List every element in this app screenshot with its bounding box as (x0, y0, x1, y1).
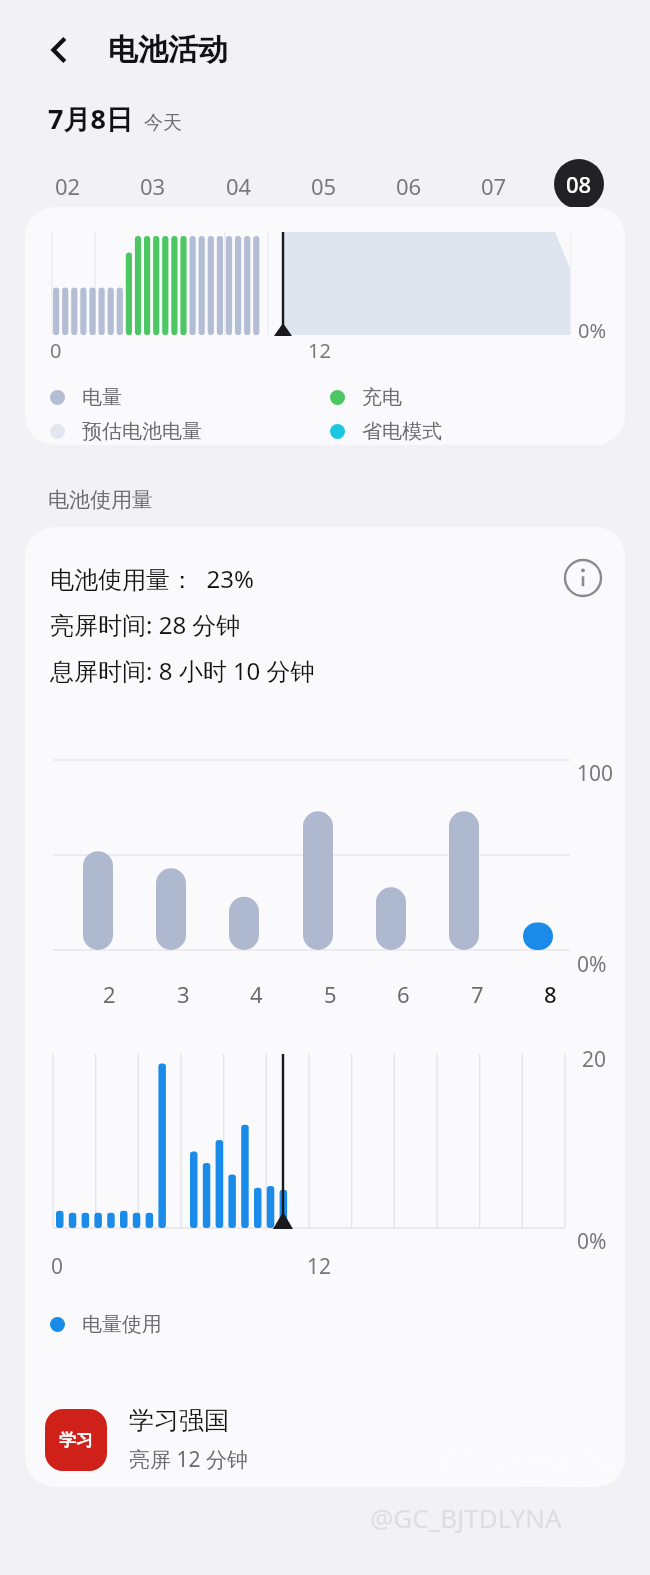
button[interactable]: 充电 (330, 385, 402, 410)
button[interactable]: Back (34, 24, 86, 76)
button[interactable]: 电量使用 (50, 1312, 162, 1337)
staticText: 08 (566, 169, 592, 199)
staticText: 7月8日 (48, 100, 133, 137)
staticText: 0% (577, 1227, 607, 1256)
button[interactable]: 学习 (45, 1392, 625, 1487)
button[interactable]: 0 (25, 207, 625, 445)
staticText: 12 (307, 1252, 332, 1281)
staticText: 0% (577, 950, 607, 979)
staticText: 电量使用 (82, 1312, 162, 1337)
staticText: 0 (51, 1252, 64, 1281)
staticText: 20 (582, 1045, 607, 1074)
staticText: 3 (177, 979, 190, 1009)
button[interactable]: 08 (554, 159, 604, 209)
staticText: 电量 (82, 385, 122, 410)
staticText: 4 (250, 979, 263, 1009)
staticText: 04 (226, 171, 252, 201)
staticText: 100 (577, 759, 614, 788)
staticText: 今天 (144, 111, 182, 135)
staticText: 学习强国 (129, 1405, 229, 1436)
staticText: 03 (140, 171, 166, 201)
staticText: @GC_BJTDLYNA (370, 1500, 562, 1535)
staticText: 0 (50, 337, 62, 364)
button[interactable]: Information (555, 550, 611, 606)
staticText: 电池使用量 (48, 487, 153, 513)
button[interactable]: 省电模式 (330, 419, 442, 444)
staticText: 8 (544, 979, 557, 1009)
staticText: 电池使用量： 23% (50, 562, 254, 595)
staticText: 电池活动 (108, 31, 228, 69)
staticText: 亮屏 12 分钟 (129, 1445, 248, 1474)
staticText: 7 (471, 979, 484, 1009)
staticText: 0% (578, 317, 607, 344)
staticText: 2 (103, 979, 116, 1009)
staticText: 12 (308, 337, 331, 364)
staticText: 02 (55, 171, 81, 201)
staticText: 07 (481, 171, 507, 201)
button[interactable]: 预估电池电量 (50, 419, 202, 444)
staticText: 息屏时间: 8 小时 10 分钟 (50, 654, 315, 687)
staticText: 5 (324, 979, 337, 1009)
staticText: 亮屏时间: 28 分钟 (50, 608, 241, 641)
button[interactable]: 电量 (50, 385, 122, 410)
staticText: 预估电池电量 (82, 419, 202, 444)
staticText: 05 (311, 171, 337, 201)
staticText: 06 (396, 171, 422, 201)
staticText: 学习 (59, 1430, 93, 1451)
staticText: 6 (397, 979, 410, 1009)
staticText: 充电 (362, 385, 402, 410)
staticText: 省电模式 (362, 419, 442, 444)
